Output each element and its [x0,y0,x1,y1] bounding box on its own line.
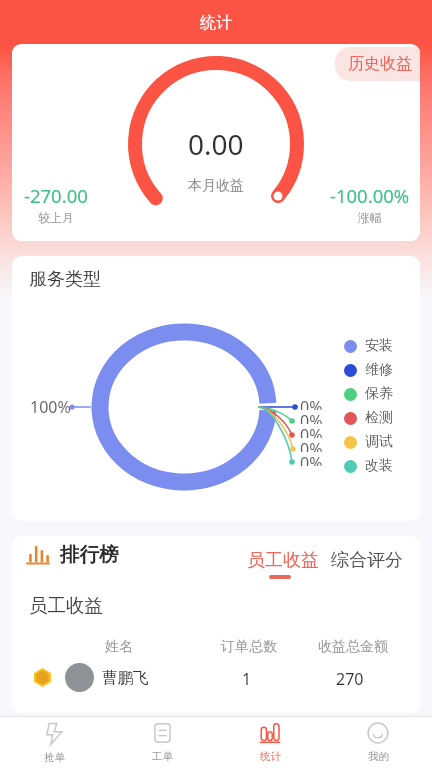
staticText: 安装 [365,337,393,355]
staticText: -270.00 [24,183,88,208]
button[interactable]: 曹鹏飞 [12,660,420,700]
staticText: 我的 [368,750,389,763]
staticText: 涨幅 [358,210,382,225]
staticText: 抢单 [44,751,65,764]
staticText: 0% [300,438,323,452]
button[interactable]: 抢单 [0,717,108,768]
button[interactable]: 我的 [324,717,432,768]
other: 工单 [152,722,173,744]
other: 统计 [259,722,281,744]
staticText: 改装 [365,457,393,475]
staticText: 0% [300,396,323,410]
staticText: 100% [30,396,71,418]
staticText: 本月收益 [188,177,244,195]
staticText: 1 [242,668,252,690]
staticText: 排行榜 [60,542,119,567]
staticText: 统计 [260,750,281,763]
button[interactable]: 历史收益 [335,47,420,81]
staticText: 姓名 [105,638,133,656]
staticText: 270 [336,668,364,690]
staticText: 0% [300,452,323,466]
staticText: 统计 [200,13,232,33]
staticText: 订单总数 [221,638,277,656]
staticText: 综合评分 [331,549,403,572]
button[interactable]: 工单 [108,717,216,768]
staticText: -100.00% [330,183,410,208]
other: 抢单 [45,722,64,745]
staticText: 检测 [365,409,393,427]
button[interactable]: 统计 [216,717,324,768]
staticText: 0% [300,410,323,424]
button[interactable]: 综合评分 [331,549,403,572]
staticText: 调试 [365,433,393,451]
button[interactable]: 员工收益 [247,549,319,579]
staticText: 员工收益 [247,549,319,572]
staticText: 历史收益 [348,54,412,74]
staticText: 员工收益 [29,594,103,617]
staticText: 维修 [365,361,393,379]
staticText: 曹鹏飞 [102,668,149,688]
staticText: 0% [300,424,323,438]
other: 我的 [367,722,389,744]
staticText: 工单 [152,750,173,763]
staticText: 0.00 [188,125,244,163]
staticText: 服务类型 [29,268,101,291]
staticText: 收益总金额 [318,638,388,656]
staticText: 保养 [365,385,393,403]
staticText: 较上月 [38,210,74,225]
